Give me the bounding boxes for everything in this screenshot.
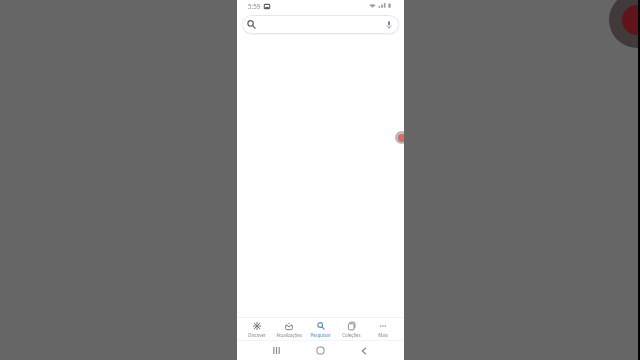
button[interactable]: Search: [242, 15, 399, 34]
staticText: Coleções: [342, 332, 361, 338]
staticText: Atualizações: [276, 332, 302, 338]
button[interactable]: Atualizações: [273, 317, 305, 340]
button[interactable]: Recent apps: [270, 344, 283, 357]
button[interactable]: Mais: [367, 317, 398, 340]
button[interactable]: Home: [314, 344, 327, 357]
button[interactable]: Pesquisar: [305, 317, 336, 340]
button[interactable]: Search by voice: [380, 16, 397, 33]
staticText: 5:59: [248, 2, 261, 10]
staticText: Discover: [248, 332, 266, 338]
staticText: Pesquisar: [310, 332, 331, 338]
button[interactable]: Coleções: [336, 317, 367, 340]
button[interactable]: Discover: [241, 317, 273, 340]
button[interactable]: Back: [357, 344, 370, 357]
button[interactable]: Search: [243, 16, 260, 33]
staticText: Mais: [378, 332, 388, 338]
